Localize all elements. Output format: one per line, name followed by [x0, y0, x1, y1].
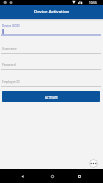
- staticText: Employee ID: [2, 80, 20, 84]
- staticText: Device Activation: [34, 8, 70, 14]
- button[interactable]: Device UDID: [0, 22, 103, 36]
- button[interactable]: More options: [89, 159, 98, 168]
- staticText: Password: [2, 63, 16, 67]
- staticText: 10:56: [89, 1, 97, 5]
- button[interactable]: Username: [0, 42, 103, 54]
- staticText: ACTIVATE: [45, 96, 58, 100]
- button[interactable]: Device Activation: [0, 5, 103, 19]
- button[interactable]: Employee ID: [0, 75, 103, 87]
- button[interactable]: Home: [45, 169, 59, 183]
- button[interactable]: ACTIVATE: [2, 91, 100, 102]
- button[interactable]: Password: [0, 58, 103, 70]
- button[interactable]: Back: [15, 169, 29, 183]
- button[interactable]: Recent apps: [72, 169, 86, 183]
- staticText: Username: [2, 47, 17, 51]
- staticText: Device UDID: [2, 24, 20, 28]
